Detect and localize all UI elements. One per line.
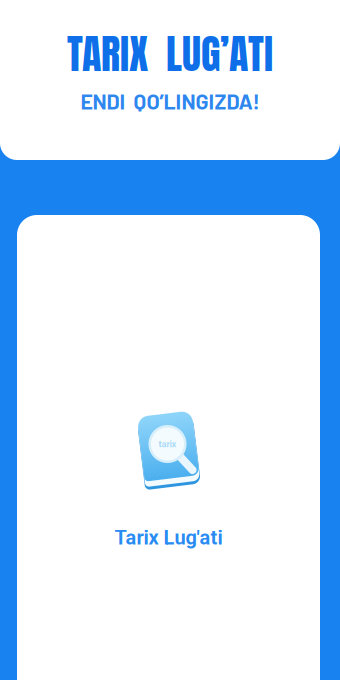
staticText: tarix (158, 438, 176, 449)
button[interactable]: tarix (114, 411, 222, 549)
staticText: TARIX LUG’ATI (67, 24, 273, 84)
staticText: ENDI QO’LINGIZDA! (80, 88, 259, 114)
staticText: Tarix Lug'ati (114, 526, 222, 549)
